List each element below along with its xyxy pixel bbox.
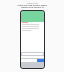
staticText: WRITING TIP (27, 2, 38, 4)
button[interactable]: Send (37, 59, 44, 62)
staticText: before you correct it (21, 6, 44, 9)
staticText: Type out the entire word (17, 3, 47, 6)
